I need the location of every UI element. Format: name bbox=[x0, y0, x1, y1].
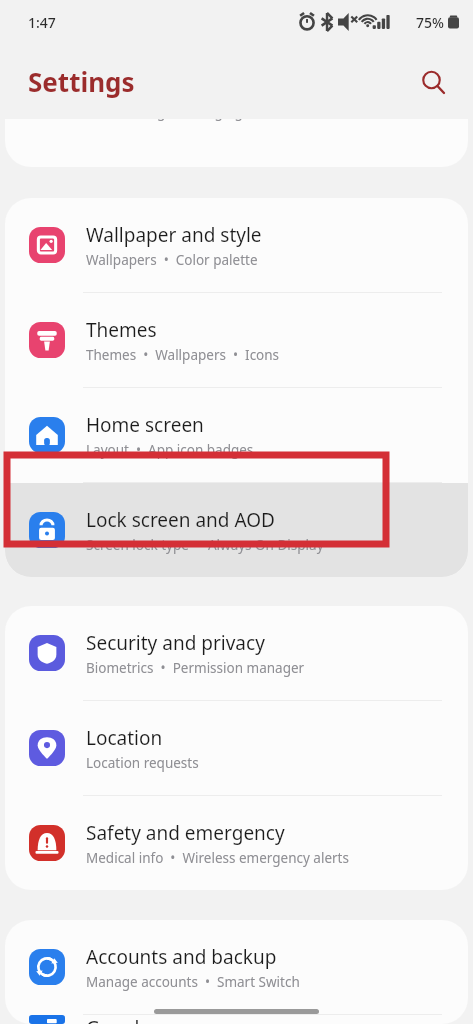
button[interactable]: Battery and device care bbox=[5, 119, 468, 121]
button[interactable]: Location bbox=[5, 701, 468, 795]
button[interactable]: Lock screen and AOD bbox=[5, 483, 468, 577]
staticText: Wallpapers • Color palette bbox=[86, 251, 258, 269]
button[interactable]: Accounts and backup bbox=[5, 920, 468, 1014]
staticText: 1:47 bbox=[28, 13, 56, 32]
button[interactable]: Security and privacy bbox=[5, 606, 468, 700]
staticText: Home screen bbox=[86, 412, 204, 438]
staticText: Google bbox=[86, 1015, 151, 1024]
staticText: Power saving • Charging bbox=[81, 119, 243, 121]
button[interactable]: Home screen bbox=[5, 388, 468, 482]
staticText: Location bbox=[86, 725, 163, 751]
staticText: Security and privacy bbox=[86, 630, 265, 656]
staticText: Safety and emergency bbox=[86, 820, 285, 846]
staticText: Layout • App icon badges bbox=[86, 441, 254, 459]
staticText: Settings bbox=[28, 64, 135, 99]
button[interactable]: Themes bbox=[5, 293, 468, 387]
staticText: Themes bbox=[86, 317, 157, 343]
staticText: 75% bbox=[416, 13, 444, 32]
staticText: Location requests bbox=[86, 754, 199, 772]
button[interactable]: Search bbox=[411, 60, 455, 104]
staticText: Biometrics • Permission manager bbox=[86, 659, 305, 677]
button[interactable]: Safety and emergency bbox=[5, 796, 468, 890]
staticText: Screen lock type • Always On Display bbox=[86, 536, 324, 554]
staticText: Lock screen and AOD bbox=[86, 507, 275, 533]
staticText: Themes • Wallpapers • Icons bbox=[86, 346, 280, 364]
staticText: Accounts and backup bbox=[86, 944, 277, 970]
button[interactable]: Google bbox=[5, 1015, 468, 1024]
staticText: Manage accounts • Smart Switch bbox=[86, 973, 300, 991]
staticText: Medical info • Wireless emergency alerts bbox=[86, 849, 349, 867]
button[interactable]: Wallpaper and style bbox=[5, 198, 468, 292]
staticText: Wallpaper and style bbox=[86, 222, 262, 248]
